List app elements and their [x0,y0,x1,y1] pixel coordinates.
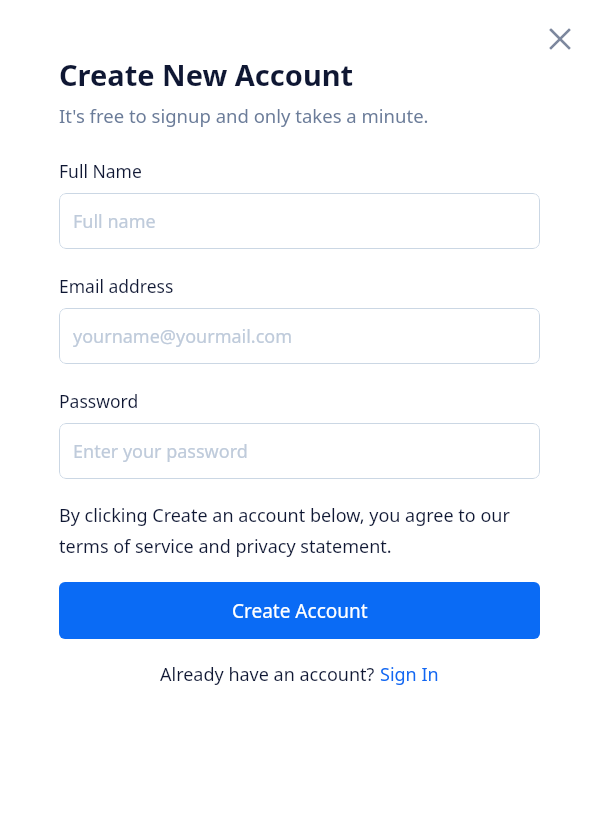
staticText: yourname@yourmail.com [73,324,293,349]
staticText: Full Name [59,159,142,183]
button[interactable]: yourname@yourmail.com [59,308,540,364]
staticText: Email address [59,274,174,298]
staticText: Enter your password [73,439,248,464]
staticText: Full name [73,209,156,234]
button[interactable]: Enter your password [59,423,540,479]
staticText: Password [59,389,139,413]
staticText: It's free to signup and only takes a min… [59,103,429,128]
staticText: Create Account [232,598,368,624]
staticText: Sign In [380,662,439,687]
staticText: By clicking Create an account below, you… [59,503,540,559]
button[interactable]: Sign In [380,662,439,687]
staticText: Create New Account [59,55,354,94]
button[interactable]: Full name [59,193,540,249]
button[interactable]: Close [534,13,585,64]
button[interactable]: Create Account [59,582,540,639]
staticText: Already have an account? [160,662,380,687]
